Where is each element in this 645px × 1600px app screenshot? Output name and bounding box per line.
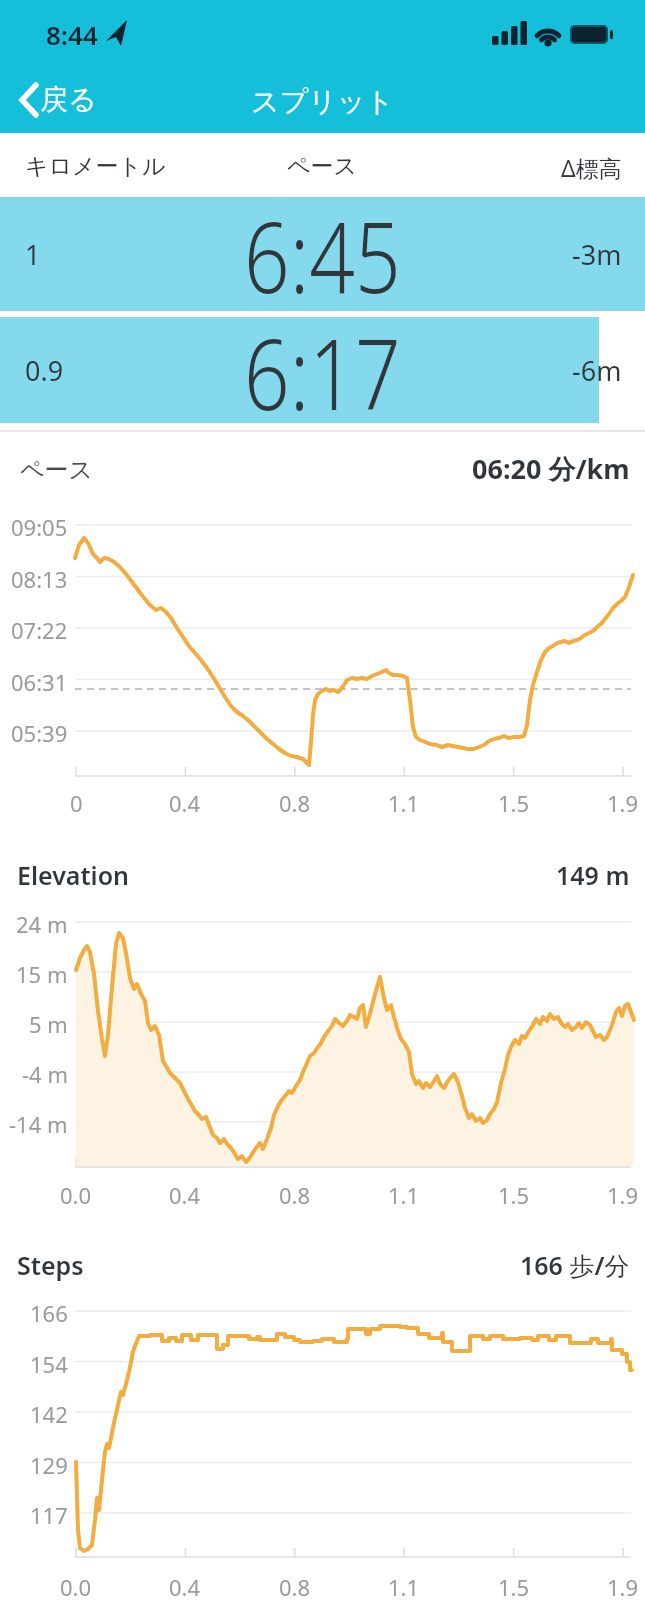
staticText: -3m	[572, 236, 622, 273]
staticText: -6m	[572, 352, 622, 389]
staticText: 142	[30, 1399, 68, 1429]
staticText: 0	[70, 788, 83, 818]
staticText: 0.4	[169, 1180, 201, 1210]
staticText: 1.1	[388, 1572, 420, 1600]
staticText: 6:17	[244, 305, 401, 435]
staticText: -4 m	[22, 1059, 68, 1089]
staticText: 0.0	[60, 1572, 92, 1600]
staticText: Elevation	[17, 858, 130, 892]
button[interactable]	[0, 317, 599, 423]
staticText: Δ標高	[561, 152, 622, 183]
staticText: 1.9	[607, 1572, 639, 1600]
staticText: 0.0	[60, 1180, 92, 1210]
staticText: 166	[30, 1298, 68, 1328]
staticText: 06:31	[11, 667, 68, 697]
staticText: 0.8	[279, 788, 311, 818]
staticText: 154	[30, 1349, 68, 1379]
staticText: 08:13	[11, 564, 68, 594]
staticText: 1.5	[498, 1572, 530, 1600]
staticText: Steps	[17, 1248, 84, 1282]
staticText: 07:22	[11, 615, 68, 645]
staticText: 0.8	[279, 1572, 311, 1600]
staticText: 0.4	[169, 788, 201, 818]
staticText: 8:44	[46, 17, 98, 52]
staticText: 09:05	[11, 512, 68, 542]
staticText: ペース	[287, 152, 358, 181]
staticText: 1.5	[498, 788, 530, 818]
staticText: スプリット	[251, 84, 395, 119]
staticText: 129	[30, 1450, 68, 1480]
staticText: 6:45	[244, 188, 401, 321]
staticText: キロメートル	[25, 152, 166, 181]
staticText: 06:20 分/km	[472, 450, 630, 487]
staticText: 5 m	[29, 1009, 68, 1039]
staticText: 1.9	[607, 788, 639, 818]
staticText: 0.8	[279, 1180, 311, 1210]
button[interactable]: 戻る	[12, 78, 103, 121]
staticText: 24 m	[16, 909, 68, 939]
staticText: 戻る	[40, 82, 97, 117]
staticText: 15 m	[16, 959, 68, 989]
staticText: 1.1	[388, 788, 420, 818]
staticText: -14 m	[9, 1109, 68, 1139]
staticText: 149 m	[556, 858, 630, 892]
staticText: 05:39	[11, 718, 68, 748]
staticText: 1.1	[388, 1180, 420, 1210]
button[interactable]: 1	[0, 197, 645, 311]
staticText: 1	[25, 236, 41, 273]
staticText: 0.4	[169, 1572, 201, 1600]
staticText: ペース	[20, 455, 94, 485]
staticText: 117	[30, 1500, 68, 1530]
staticText: 1.5	[498, 1180, 530, 1210]
staticText: 166 歩/分	[520, 1248, 630, 1282]
staticText: 0.9	[25, 352, 64, 389]
staticText: 1.9	[607, 1180, 639, 1210]
